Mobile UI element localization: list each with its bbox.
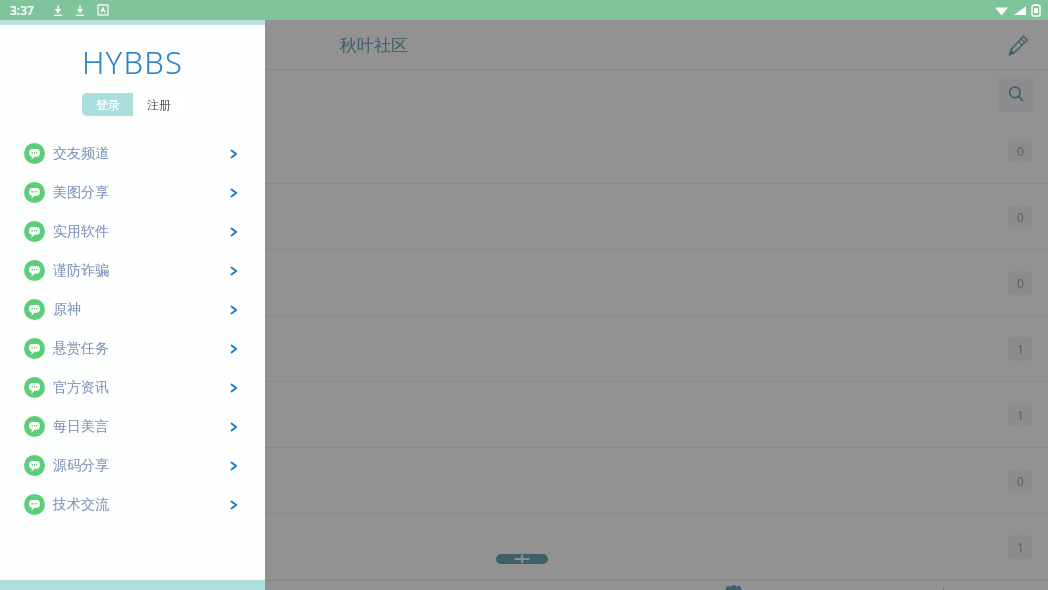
- button[interactable]: 活动公告 3天前: [0, 316, 1048, 381]
- staticText: 技术交流贴 5天前: [16, 405, 1008, 424]
- staticText: 板块讨论区: [16, 208, 1008, 226]
- staticText: 0: [1017, 473, 1024, 489]
- button[interactable]: 好友: [628, 580, 838, 590]
- button[interactable]: 技术交流: [0, 485, 265, 524]
- staticText: 实用软件: [53, 223, 229, 241]
- staticText: 0: [1017, 209, 1024, 225]
- button[interactable]: 官方资讯: [0, 368, 265, 407]
- button[interactable]: 每日美言: [0, 407, 265, 446]
- staticText: 0: [1017, 143, 1024, 159]
- button[interactable]: Compose: [1000, 28, 1034, 62]
- staticText: 活动公告 3天前: [16, 339, 1008, 358]
- staticText: 交友频道: [53, 145, 229, 163]
- staticText: 每日美言: [53, 418, 229, 436]
- staticText: 悬赏任务: [53, 340, 229, 358]
- button[interactable]: 注册: [133, 93, 184, 116]
- staticText: 最新热帖分享: [16, 274, 1008, 292]
- button[interactable]: 源码分享: [0, 446, 265, 485]
- button[interactable]: 板块讨论区: [0, 184, 1048, 249]
- button[interactable]: 我的: [838, 580, 1048, 590]
- staticText: 注册: [147, 97, 171, 112]
- staticText: 登录: [96, 97, 120, 112]
- staticText: 站务处理: [16, 472, 1008, 490]
- button[interactable]: Search: [998, 76, 1034, 112]
- staticText: 1: [1017, 341, 1024, 357]
- button[interactable]: 悬赏任务: [0, 329, 265, 368]
- button[interactable]: 最新热帖分享: [0, 250, 1048, 315]
- staticText: 源码分享: [53, 457, 229, 475]
- button[interactable]: 站务处理: [0, 448, 1048, 513]
- staticText: 3:37: [10, 2, 34, 18]
- button[interactable]: 新人报道有问题: [0, 118, 1048, 183]
- button[interactable]: 技术交流贴 5天前: [0, 382, 1048, 447]
- button[interactable]: 交友频道: [0, 134, 265, 173]
- button[interactable]: 美图分享: [0, 173, 265, 212]
- button[interactable]: 谨防诈骗: [0, 251, 265, 290]
- staticText: 新人报道有问题: [16, 142, 1008, 160]
- staticText: 0: [1017, 275, 1024, 291]
- staticText: 每日签到: [16, 538, 1008, 556]
- staticText: 秋叶社区: [340, 35, 408, 56]
- staticText: 1: [1017, 407, 1024, 423]
- button[interactable]: 每日签到: [0, 514, 1048, 579]
- staticText: 美图分享: [53, 184, 229, 202]
- button[interactable]: 实用软件: [0, 212, 265, 251]
- button[interactable]: 原神: [0, 290, 265, 329]
- staticText: HYBBS: [0, 41, 265, 83]
- staticText: 原神: [53, 301, 229, 319]
- staticText: 1: [1017, 539, 1024, 555]
- staticText: 技术交流: [53, 496, 229, 514]
- button[interactable]: New post: [496, 554, 548, 564]
- button[interactable]: 登录: [82, 93, 133, 116]
- staticText: 谨防诈骗: [53, 262, 229, 280]
- staticText: 官方资讯: [53, 379, 229, 397]
